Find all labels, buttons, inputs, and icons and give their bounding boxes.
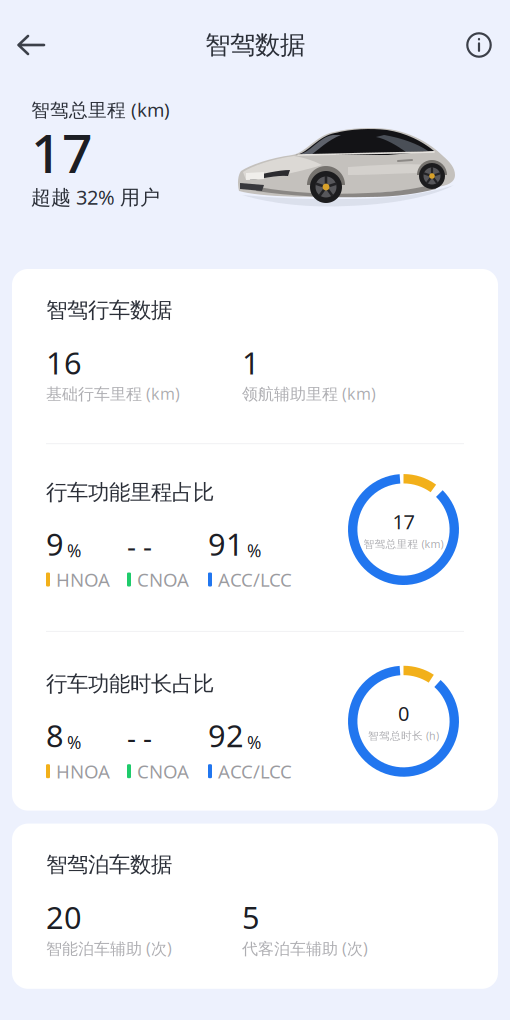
- staticText: 9: [46, 523, 64, 564]
- staticText: %: [247, 539, 261, 562]
- staticText: 0: [398, 700, 409, 726]
- staticText: 92: [208, 715, 244, 756]
- staticText: 91: [208, 523, 244, 564]
- staticText: CNOA: [137, 759, 189, 784]
- staticText: 17: [31, 117, 93, 188]
- staticText: CNOA: [137, 567, 189, 592]
- staticText: %: [67, 539, 81, 562]
- staticText: - -: [127, 527, 152, 564]
- staticText: 智驾数据: [205, 29, 305, 60]
- staticText: 超越 32% 用户: [31, 184, 160, 210]
- staticText: 基础行车里程 (km): [46, 383, 180, 404]
- staticText: 5: [242, 897, 260, 937]
- staticText: 20: [46, 897, 82, 937]
- staticText: 智驾总里程 (km): [31, 97, 170, 122]
- staticText: - -: [127, 719, 152, 756]
- staticText: %: [67, 731, 81, 754]
- staticText: 行车功能里程占比: [46, 479, 214, 505]
- staticText: 8: [46, 715, 64, 756]
- staticText: %: [247, 731, 261, 754]
- staticText: 智驾行车数据: [46, 297, 172, 323]
- staticText: 代客泊车辅助 (次): [242, 937, 368, 959]
- staticText: ACC/LCC: [218, 759, 292, 784]
- staticText: 行车功能时长占比: [46, 671, 214, 697]
- staticText: 1: [242, 342, 260, 383]
- button[interactable]: Back: [2, 16, 60, 74]
- staticText: ACC/LCC: [218, 567, 292, 592]
- staticText: 17: [392, 508, 414, 535]
- staticText: HNOA: [56, 759, 110, 784]
- staticText: 智能泊车辅助 (次): [46, 937, 172, 959]
- staticText: 领航辅助里程 (km): [242, 383, 376, 404]
- staticText: HNOA: [56, 567, 110, 592]
- staticText: 16: [46, 342, 82, 383]
- staticText: 智驾总时长 (h): [368, 728, 439, 743]
- staticText: 智驾总里程 (km): [363, 537, 443, 551]
- staticText: 智驾泊车数据: [46, 852, 172, 878]
- button[interactable]: Information: [450, 16, 508, 74]
